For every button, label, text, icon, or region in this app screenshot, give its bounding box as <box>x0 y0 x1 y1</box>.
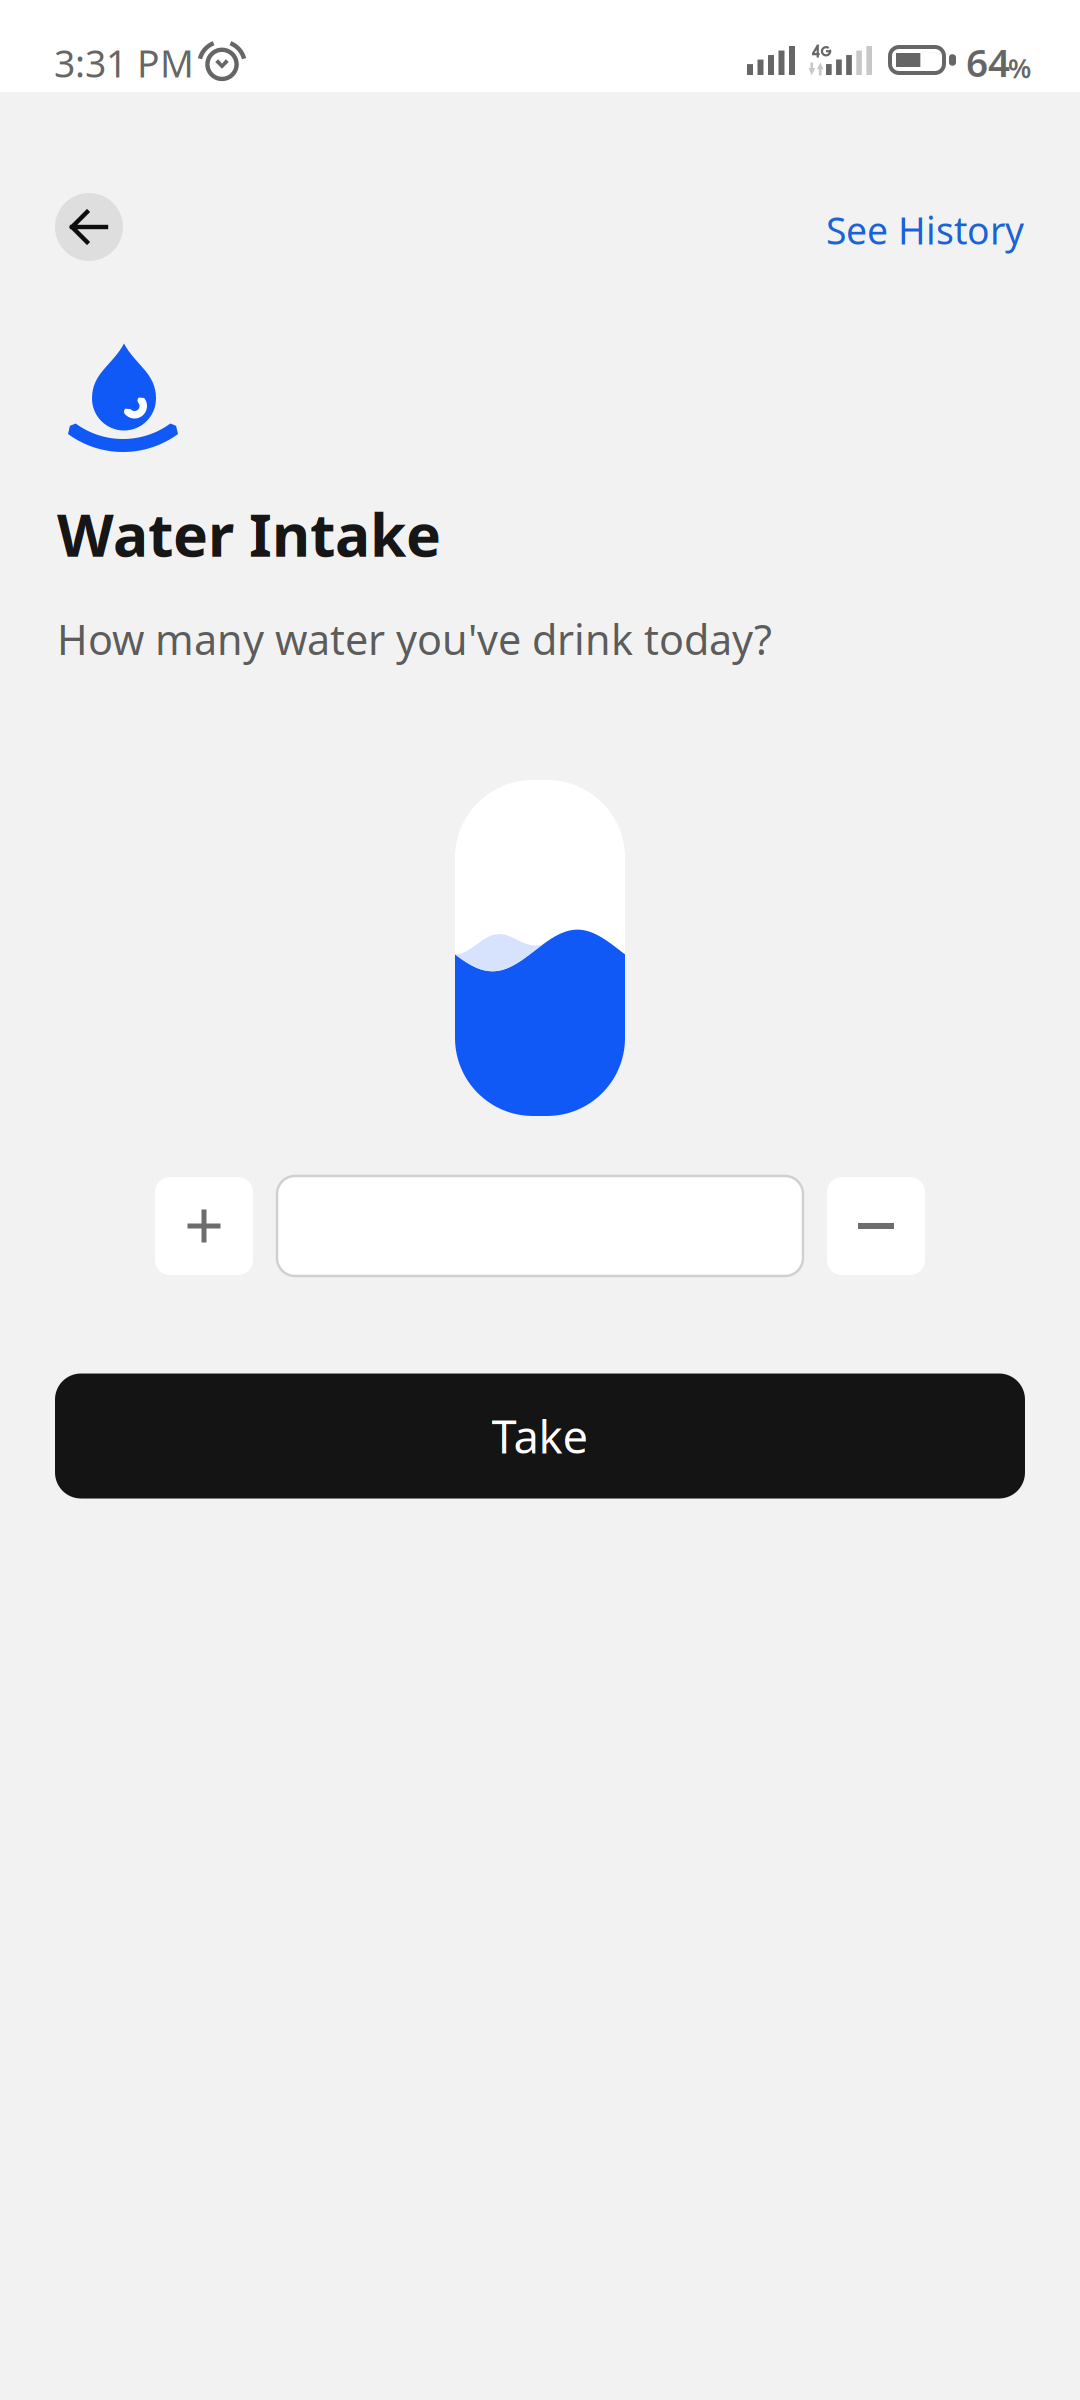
button[interactable]: Add water <box>155 1177 253 1275</box>
button[interactable]: Back <box>55 193 123 261</box>
staticText: How many water you've drink today? <box>57 612 772 666</box>
staticText: Take <box>491 1406 588 1466</box>
staticText: 3:31 PM <box>54 38 194 88</box>
button[interactable]: Remove water <box>827 1177 925 1275</box>
staticText: 64 <box>966 36 1010 88</box>
button[interactable]: Take <box>55 1373 1025 1498</box>
button[interactable]: Amount of water <box>277 1176 803 1276</box>
staticText: Water Intake <box>57 495 441 573</box>
staticText: % <box>1008 50 1031 86</box>
button[interactable]: See History <box>724 193 1024 267</box>
staticText: See History <box>826 205 1024 255</box>
